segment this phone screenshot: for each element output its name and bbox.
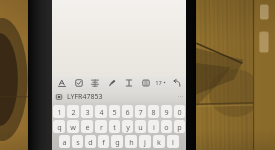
button[interactable]: a (59, 135, 70, 148)
button[interactable]: 6 (122, 105, 133, 118)
staticText: g (115, 137, 120, 147)
button[interactable]: y (122, 120, 133, 133)
button[interactable]: Clipboard suggestion (52, 90, 186, 103)
staticText: 5 (112, 107, 117, 117)
button[interactable]: q (53, 120, 65, 133)
staticText: 0 (177, 107, 182, 117)
button[interactable]: f (98, 135, 109, 148)
button[interactable]: 0 (174, 105, 185, 118)
staticText: k (157, 137, 161, 147)
staticText: 17 (155, 79, 162, 87)
button[interactable]: g (111, 135, 123, 148)
staticText: i (153, 122, 155, 132)
button[interactable]: 3 (81, 105, 93, 118)
button[interactable]: k (153, 135, 165, 148)
staticText: q (57, 122, 62, 132)
staticText: w (70, 122, 76, 132)
staticText: p (177, 122, 182, 132)
button[interactable]: p (174, 120, 185, 133)
button[interactable]: 1 (53, 105, 65, 118)
button[interactable]: s (72, 135, 83, 148)
staticText: s (76, 137, 80, 147)
button[interactable]: 9 (161, 105, 172, 118)
button[interactable]: 4 (95, 105, 107, 118)
staticText: j (144, 137, 146, 147)
button[interactable]: Checklist (72, 76, 85, 89)
button[interactable]: 2 (67, 105, 79, 118)
button[interactable]: Text format (55, 76, 68, 89)
staticText: 8 (151, 107, 156, 117)
button[interactable]: r (95, 120, 107, 133)
button[interactable]: Clipboard suggestion (56, 94, 62, 100)
staticText: h (129, 137, 134, 147)
staticText: LYFR47853 (67, 92, 103, 102)
button[interactable]: i (148, 120, 159, 133)
staticText: 6 (125, 107, 130, 117)
button[interactable]: o (161, 120, 172, 133)
staticText: 3 (85, 107, 90, 117)
staticText: e (85, 122, 90, 132)
staticText: o (164, 122, 169, 132)
button[interactable]: Insert table (139, 76, 152, 89)
button[interactable]: w (67, 120, 79, 133)
staticText: d (88, 137, 93, 147)
staticText: 2 (71, 107, 76, 117)
button[interactable]: d (85, 135, 96, 148)
staticText: l (172, 137, 174, 147)
staticText: y (126, 122, 130, 132)
button[interactable]: Undo (170, 76, 183, 89)
button[interactable]: t (109, 120, 120, 133)
button[interactable]: 7 (135, 105, 146, 118)
staticText: 1 (57, 107, 62, 117)
staticText: 7 (138, 107, 143, 117)
staticText: 9 (164, 107, 169, 117)
button[interactable]: Font size 17 (155, 76, 166, 89)
staticText: f (102, 137, 105, 147)
staticText: 4 (99, 107, 104, 117)
staticText: r (100, 122, 103, 132)
staticText: t (113, 122, 116, 132)
staticText: a (62, 137, 67, 147)
button[interactable]: 5 (109, 105, 120, 118)
button[interactable]: u (135, 120, 146, 133)
button[interactable]: e (81, 120, 93, 133)
button[interactable]: 8 (148, 105, 159, 118)
staticText: u (138, 122, 143, 132)
button[interactable]: Paragraph align (88, 76, 101, 89)
button[interactable]: h (125, 135, 137, 148)
button[interactable]: j (139, 135, 151, 148)
button[interactable]: l (167, 135, 179, 148)
button[interactable]: Draw (105, 76, 118, 89)
button[interactable]: Text style (122, 76, 135, 89)
